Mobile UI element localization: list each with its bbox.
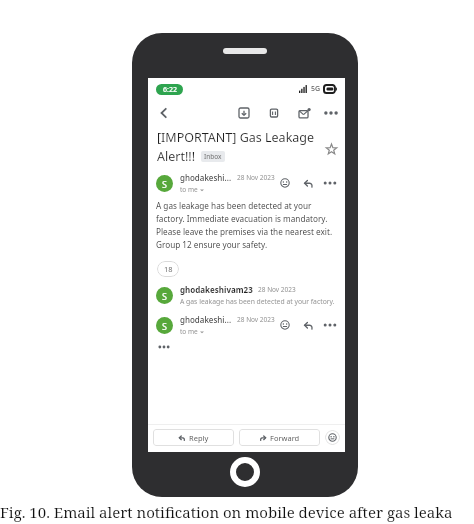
staticText: to me (180, 185, 198, 194)
button[interactable]: More options (324, 106, 338, 120)
staticText: ghodakeshi... (180, 172, 232, 183)
button[interactable]: Reply (153, 429, 234, 446)
button[interactable]: Mark as unread (296, 105, 312, 121)
button[interactable]: Reply (301, 318, 315, 332)
staticText: 5G (311, 84, 321, 94)
button[interactable]: More (323, 176, 337, 190)
staticText: [IMPORTANT] Gas Leakage (157, 129, 315, 146)
button[interactable]: Show trimmed content (157, 340, 171, 354)
staticText: Alert!!! (157, 148, 196, 165)
staticText: S (162, 178, 167, 190)
button[interactable]: Back (155, 104, 173, 122)
staticText: S (162, 290, 167, 302)
button[interactable]: S (156, 314, 337, 336)
button[interactable]: Forward (239, 429, 320, 446)
staticText: Group 12 ensure your safety. (156, 239, 268, 250)
button[interactable]: Reply (301, 176, 315, 190)
staticText: to me (180, 327, 198, 336)
button[interactable]: Add emoji reaction (325, 430, 340, 445)
button[interactable]: Star (323, 141, 339, 157)
staticText: Inbox (204, 152, 222, 161)
staticText: 28 Nov 2023 (237, 173, 275, 182)
button[interactable]: Archive (236, 105, 252, 121)
staticText: 28 Nov 2023 (258, 285, 296, 294)
staticText: ghodakeshi... (180, 314, 232, 325)
button[interactable]: S (156, 284, 337, 306)
button[interactable]: Delete (266, 105, 282, 121)
button[interactable]: Inbox (204, 152, 222, 161)
staticText: S (162, 320, 167, 332)
staticText: factory. Immediate evacuation is mandato… (156, 213, 328, 224)
staticText: ghodakeshivam23 (180, 284, 253, 295)
staticText: Please leave the premises via the neares… (156, 226, 333, 237)
button[interactable]: S (156, 172, 337, 194)
staticText: Fig. 10. Email alert notification on mob… (0, 502, 453, 522)
button[interactable]: More (323, 318, 337, 332)
staticText: A gas leakage has been detected at your (156, 200, 312, 211)
staticText: Reply (189, 433, 209, 443)
button[interactable]: Add reaction (278, 176, 292, 190)
staticText: 28 Nov 2023 (237, 315, 275, 324)
staticText: 18 (164, 264, 173, 274)
button[interactable]: 18 (157, 261, 179, 277)
staticText: 6:22 (163, 85, 177, 95)
button[interactable]: Add reaction (278, 318, 292, 332)
staticText: Forward (270, 433, 300, 443)
staticText: A gas leakage has been detected at your … (180, 297, 337, 306)
button[interactable]: Home (230, 457, 260, 487)
